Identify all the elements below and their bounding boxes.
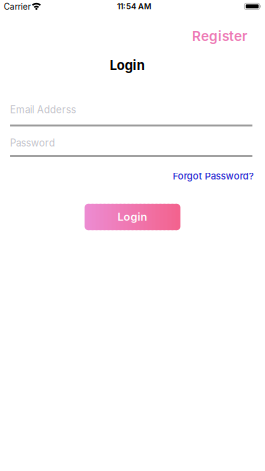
button[interactable]: Password xyxy=(10,134,253,152)
staticText: Forgot Password? xyxy=(173,170,254,182)
staticText: Register xyxy=(192,28,247,44)
button[interactable]: Login xyxy=(85,204,180,230)
staticText: Email Adderss xyxy=(10,104,76,116)
staticText: Login xyxy=(117,210,147,223)
button[interactable]: Email Adderss xyxy=(10,101,253,119)
staticText: Login xyxy=(110,57,145,73)
staticText: 11:54 AM xyxy=(117,2,151,11)
button[interactable]: Register xyxy=(192,28,247,44)
staticText: Carrier xyxy=(4,1,31,12)
staticText: Password xyxy=(10,137,55,149)
button[interactable]: Forgot Password? xyxy=(11,168,254,184)
